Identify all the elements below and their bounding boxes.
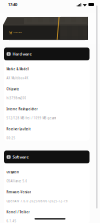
button[interactable]: Firmware-Version [4, 183, 89, 203]
button[interactable]: Hardware [4, 47, 89, 60]
staticText: Marke & Modell [6, 67, 29, 71]
staticText: hi3798mv200 [6, 96, 26, 100]
staticText: 00:25 [6, 136, 15, 140]
staticText: 512/128 MB frei / 1099 MB gesamt [6, 116, 56, 120]
staticText: Hardware [12, 51, 31, 57]
staticText: OpenATV 7.6.0 2025/08/06 (2025-12-19) [6, 199, 68, 203]
button[interactable]: Marke & Modell [4, 60, 89, 80]
button[interactable]: Receiver Laufzeit [4, 120, 89, 140]
staticText: Kernel / Treiber [6, 210, 29, 214]
button[interactable]: Chipsatz [4, 80, 89, 100]
staticText: Firmware-Version [6, 190, 31, 194]
staticText: AX MULTIBOX [13, 32, 22, 33]
staticText: 17:40 [8, 2, 17, 7]
staticText: Chipsatz [6, 87, 18, 91]
staticText: OS Alliance 5.6 [6, 179, 27, 183]
staticText: Interne Flashspeicher [6, 107, 37, 111]
button[interactable]: Interne Flashspeicher [4, 100, 89, 120]
button[interactable]: OS System [4, 163, 89, 183]
staticText: AX Multibox 4K [6, 76, 28, 80]
button[interactable]: Software [4, 150, 89, 163]
staticText: OS System [6, 170, 19, 174]
staticText: Software [12, 154, 28, 160]
staticText: 6.1.45 [6, 219, 16, 223]
staticText: Receiver Laufzeit [6, 127, 30, 131]
button[interactable]: Kernel / Treiber [4, 203, 89, 223]
